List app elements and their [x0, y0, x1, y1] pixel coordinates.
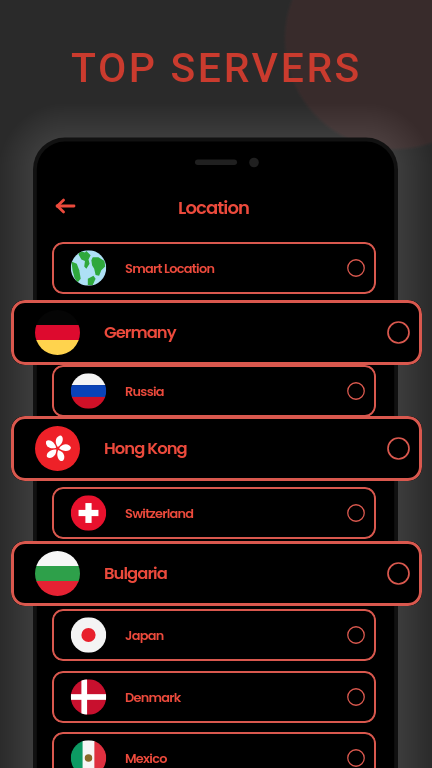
- button[interactable]: Back: [50, 190, 82, 222]
- button[interactable]: Denmark: [52, 671, 376, 723]
- staticText: Japan: [125, 626, 164, 644]
- button[interactable]: Japan: [52, 609, 376, 661]
- staticText: TOP SERVERS: [71, 44, 362, 92]
- button[interactable]: Hong Kong: [11, 416, 422, 481]
- staticText: Switzerland: [125, 504, 194, 522]
- staticText: Location: [35, 195, 392, 220]
- staticText: Bulgaria: [104, 562, 167, 585]
- button[interactable]: Russia: [52, 365, 376, 417]
- button[interactable]: Switzerland: [52, 487, 376, 539]
- staticText: Smart Location: [125, 259, 215, 277]
- staticText: Denmark: [125, 688, 181, 706]
- button[interactable]: Bulgaria: [11, 541, 422, 606]
- staticText: Germany: [104, 321, 176, 344]
- staticText: Mexico: [125, 749, 167, 767]
- button[interactable]: Smart Location: [52, 242, 376, 294]
- staticText: Hong Kong: [104, 437, 187, 460]
- staticText: Russia: [125, 382, 164, 400]
- button[interactable]: Mexico: [52, 732, 376, 768]
- button[interactable]: Germany: [11, 300, 422, 365]
